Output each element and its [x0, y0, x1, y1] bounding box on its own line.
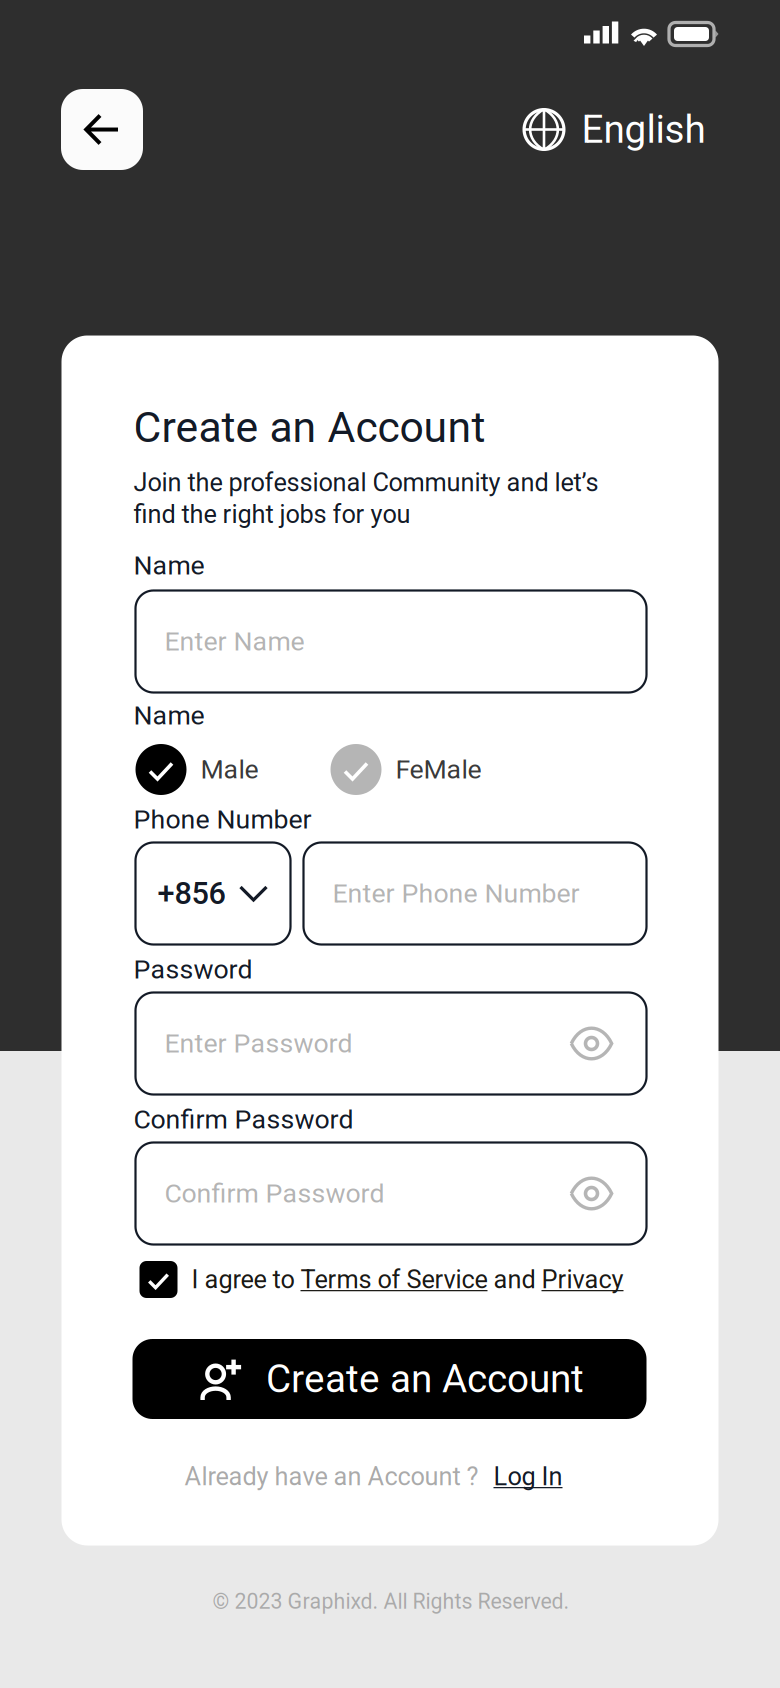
staticText: Create an Account — [133, 402, 485, 452]
button[interactable]: Male — [135, 744, 258, 795]
staticText: FeMale — [395, 754, 481, 785]
button[interactable]: Create an Account — [132, 1339, 646, 1419]
staticText: English — [581, 107, 705, 152]
staticText: I agree to Terms of Service and Privacy — [191, 1265, 623, 1294]
staticText: © 2023 Graphixd. All Rights Reserved. — [212, 1589, 569, 1614]
staticText: Create an Account — [266, 1356, 584, 1402]
button[interactable]: Show password — [569, 1181, 613, 1206]
staticText: Name — [133, 550, 204, 581]
staticText: Phone Number — [133, 804, 311, 835]
staticText: Enter Name — [164, 626, 304, 657]
button[interactable]: English — [522, 107, 705, 152]
staticText: Confirm Password — [164, 1178, 384, 1209]
staticText: Male — [200, 754, 258, 785]
button[interactable]: FeMale — [330, 744, 481, 795]
staticText: find the right jobs for you — [133, 499, 410, 529]
staticText: Enter Password — [164, 1028, 352, 1059]
button[interactable]: Back — [61, 89, 143, 170]
button[interactable]: Log In — [493, 1462, 562, 1491]
button[interactable]: Agree to terms — [139, 1261, 177, 1298]
button[interactable]: +856 — [135, 842, 290, 944]
button[interactable]: Show password — [569, 1031, 613, 1056]
staticText: Already have an Account ? — [184, 1462, 478, 1491]
staticText: Log In — [493, 1462, 562, 1491]
staticText: Password — [133, 954, 252, 985]
staticText: Name — [133, 700, 204, 731]
staticText: Confirm Password — [133, 1104, 353, 1135]
staticText: Enter Phone Number — [332, 878, 579, 909]
staticText: Join the professional Community and let’… — [133, 468, 598, 497]
staticText: +856 — [157, 875, 225, 911]
